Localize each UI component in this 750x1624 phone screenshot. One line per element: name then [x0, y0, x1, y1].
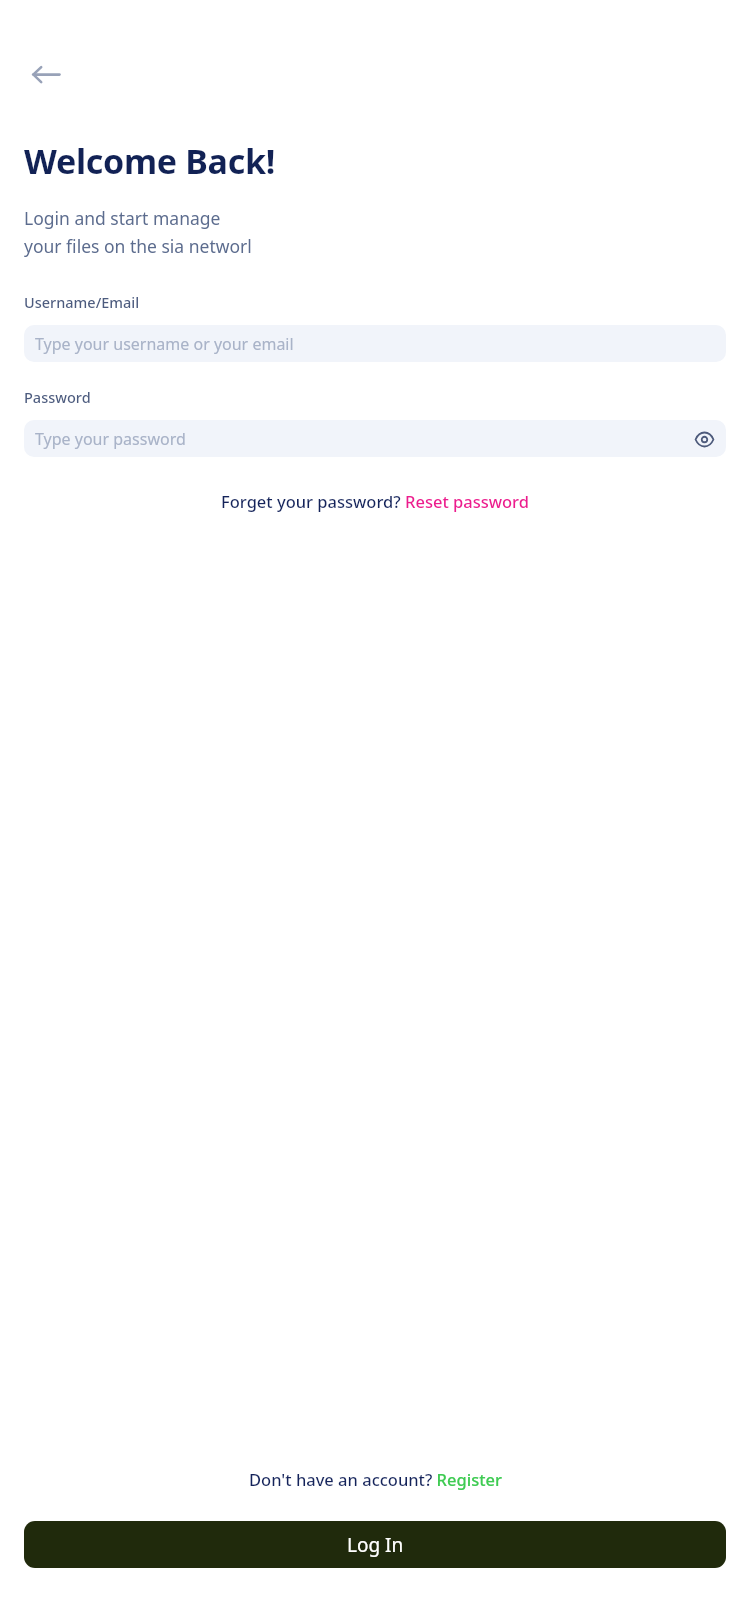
button[interactable]: Show password: [689, 424, 719, 454]
button[interactable]: Forget your password? Reset password: [217, 487, 533, 515]
button[interactable]: Log In: [24, 1521, 726, 1568]
staticText: Don't have an account? Register: [249, 1468, 502, 1490]
button[interactable]: Back: [24, 52, 68, 96]
staticText: Forget your password? Reset password: [221, 490, 529, 512]
button[interactable]: Don't have an account? Register: [245, 1465, 506, 1493]
staticText: Type your username or your email: [35, 333, 294, 355]
button[interactable]: Type your password: [24, 420, 726, 457]
staticText: Username/Email: [24, 292, 140, 312]
staticText: Welcome Back!: [24, 138, 275, 184]
button[interactable]: Type your username or your email: [24, 325, 726, 362]
staticText: Login and start manage your files on the…: [24, 206, 252, 258]
staticText: Password: [24, 387, 91, 407]
staticText: Log In: [347, 1532, 404, 1558]
staticText: Type your password: [35, 428, 186, 450]
